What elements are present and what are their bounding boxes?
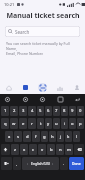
button[interactable]: Reports	[51, 81, 68, 94]
staticText: s	[17, 134, 20, 140]
staticText: 5	[39, 108, 42, 114]
button[interactable]: 2	[10, 106, 18, 116]
staticText: c	[32, 147, 35, 153]
staticText: 8	[63, 108, 66, 114]
staticText: Email, Phone Number.	[6, 51, 44, 56]
button[interactable]: k	[65, 131, 72, 142]
button[interactable]: x	[20, 144, 28, 155]
staticText: 1	[4, 108, 7, 114]
button[interactable]: i	[61, 118, 68, 129]
staticText: j	[60, 134, 62, 140]
button[interactable]: 5	[37, 106, 44, 116]
button[interactable]: u	[53, 118, 60, 129]
staticText: t	[40, 121, 42, 127]
button[interactable]: Symbols	[1, 157, 12, 170]
staticText: v	[41, 147, 44, 153]
button[interactable]: f	[32, 131, 40, 142]
button[interactable]: ,	[13, 157, 21, 170]
staticText: d	[26, 134, 29, 140]
staticText: You can search ticket manually by Full N…	[6, 41, 79, 51]
staticText: h	[51, 134, 54, 140]
button[interactable]: Home	[0, 81, 17, 94]
staticText: Done	[72, 161, 81, 166]
staticText: a	[8, 134, 11, 140]
button[interactable]: d	[23, 131, 31, 142]
staticText: m	[67, 147, 71, 153]
button[interactable]: o	[69, 118, 76, 129]
button[interactable]: Tickets	[17, 81, 34, 94]
button[interactable]: ‹	[22, 157, 59, 170]
button[interactable]: Clipboard	[56, 95, 65, 104]
staticText: Search	[15, 29, 30, 35]
staticText: k	[67, 134, 70, 140]
button[interactable]: 8	[61, 106, 68, 116]
button[interactable]: g	[41, 131, 48, 142]
staticText: z	[14, 147, 16, 153]
staticText: x	[23, 147, 26, 153]
staticText: g	[43, 134, 46, 140]
button[interactable]: 3	[19, 106, 27, 116]
button[interactable]: l	[73, 131, 80, 142]
button[interactable]: Profile	[68, 81, 85, 94]
staticText: y	[47, 121, 50, 127]
button[interactable]: c	[29, 144, 37, 155]
staticText: 3	[22, 108, 25, 114]
button[interactable]: a	[5, 131, 13, 142]
button[interactable]: Settings	[21, 95, 30, 104]
staticText: 0	[79, 108, 82, 114]
staticText: 6	[47, 108, 50, 114]
staticText: l	[76, 134, 78, 140]
button[interactable]: 7	[53, 106, 60, 116]
button[interactable]: p	[77, 118, 84, 129]
staticText: q	[4, 121, 7, 127]
button[interactable]: h	[49, 131, 56, 142]
staticText: 10:21	[4, 2, 15, 7]
staticText: n	[59, 147, 62, 153]
button[interactable]: 9	[69, 106, 76, 116]
button[interactable]: v	[38, 144, 46, 155]
staticText: u	[55, 121, 58, 127]
staticText: 4	[31, 108, 34, 114]
button[interactable]: s	[14, 131, 22, 142]
button[interactable]: r	[28, 118, 36, 129]
button[interactable]: e	[19, 118, 27, 129]
staticText: 2	[13, 108, 16, 114]
staticText: English (US)	[31, 161, 50, 166]
button[interactable]: 6	[45, 106, 52, 116]
staticText: r	[31, 121, 33, 127]
button[interactable]: q	[1, 118, 9, 129]
button[interactable]: Collapse keyboard	[73, 95, 82, 104]
staticText: p	[79, 121, 82, 127]
button[interactable]: n	[56, 144, 64, 155]
button[interactable]: 0	[77, 106, 84, 116]
button[interactable]: m	[65, 144, 73, 155]
staticText: f	[35, 134, 37, 140]
button[interactable]: Shift	[1, 144, 10, 155]
button[interactable]: .	[60, 157, 68, 170]
button[interactable]: b	[47, 144, 55, 155]
button[interactable]: w	[10, 118, 18, 129]
button[interactable]: y	[45, 118, 52, 129]
button[interactable]: 4	[28, 106, 36, 116]
staticText: .	[63, 161, 65, 167]
staticText: i	[64, 121, 66, 127]
button[interactable]: Search	[5, 26, 80, 37]
staticText: b	[50, 147, 53, 153]
button[interactable]: j	[57, 131, 64, 142]
button[interactable]: Done	[69, 157, 84, 170]
button[interactable]: Emoji	[3, 95, 12, 104]
button[interactable]: Backspace	[74, 144, 84, 155]
staticText: ›	[52, 161, 54, 166]
button[interactable]: Sticker	[38, 95, 47, 104]
staticText: Manual ticket search	[6, 11, 80, 21]
staticText: e	[22, 121, 25, 127]
staticText: w	[12, 121, 16, 127]
staticText: 7	[55, 108, 58, 114]
button[interactable]: Scan	[34, 81, 51, 94]
staticText: o	[71, 121, 74, 127]
staticText: ‹	[27, 161, 29, 166]
button[interactable]: 1	[1, 106, 9, 116]
staticText: ,	[16, 161, 18, 167]
button[interactable]: z	[11, 144, 19, 155]
button[interactable]: t	[37, 118, 44, 129]
